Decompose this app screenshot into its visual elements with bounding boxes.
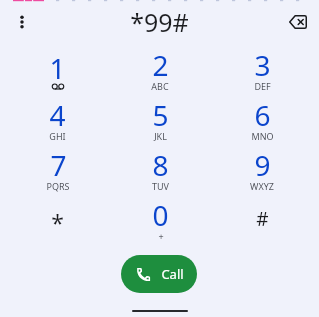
button[interactable]: 8 (109, 144, 211, 194)
button[interactable]: 7 (6, 144, 109, 194)
button[interactable]: Call (121, 255, 197, 293)
button[interactable]: 0 (109, 194, 211, 244)
button[interactable]: More options (8, 8, 36, 36)
button[interactable]: 3 (211, 44, 313, 94)
staticText: WXYZ (250, 180, 274, 192)
button[interactable]: 1 (6, 44, 109, 94)
staticText: 6 (254, 96, 271, 134)
staticText: 1 (49, 49, 66, 87)
staticText: + (158, 230, 164, 242)
staticText: 9 (254, 146, 271, 184)
staticText: 0 (152, 196, 169, 234)
staticText: MNO (251, 130, 274, 142)
button[interactable]: Backspace (282, 6, 314, 38)
staticText: TUV (152, 180, 169, 192)
button[interactable]: 4 (6, 94, 109, 144)
button[interactable]: * (6, 194, 109, 244)
staticText: * (51, 207, 64, 238)
staticText: 3 (254, 46, 271, 84)
staticText: ABC (151, 80, 169, 92)
button[interactable]: 5 (109, 94, 211, 144)
staticText: *99# (130, 5, 189, 39)
staticText: 7 (50, 146, 67, 184)
staticText: 5 (152, 96, 169, 134)
staticText: GHI (49, 130, 66, 142)
button[interactable]: 2 (109, 44, 211, 94)
staticText: 2 (152, 46, 169, 84)
staticText: 4 (49, 96, 66, 134)
button[interactable]: # (211, 194, 313, 244)
staticText: JKL (154, 130, 167, 142)
button[interactable]: 9 (211, 144, 313, 194)
staticText: 8 (152, 146, 169, 184)
button[interactable]: 6 (211, 94, 313, 144)
staticText: # (256, 206, 269, 232)
staticText: DEF (254, 80, 271, 92)
staticText: Call (161, 265, 184, 283)
staticText: PQRS (46, 180, 70, 192)
